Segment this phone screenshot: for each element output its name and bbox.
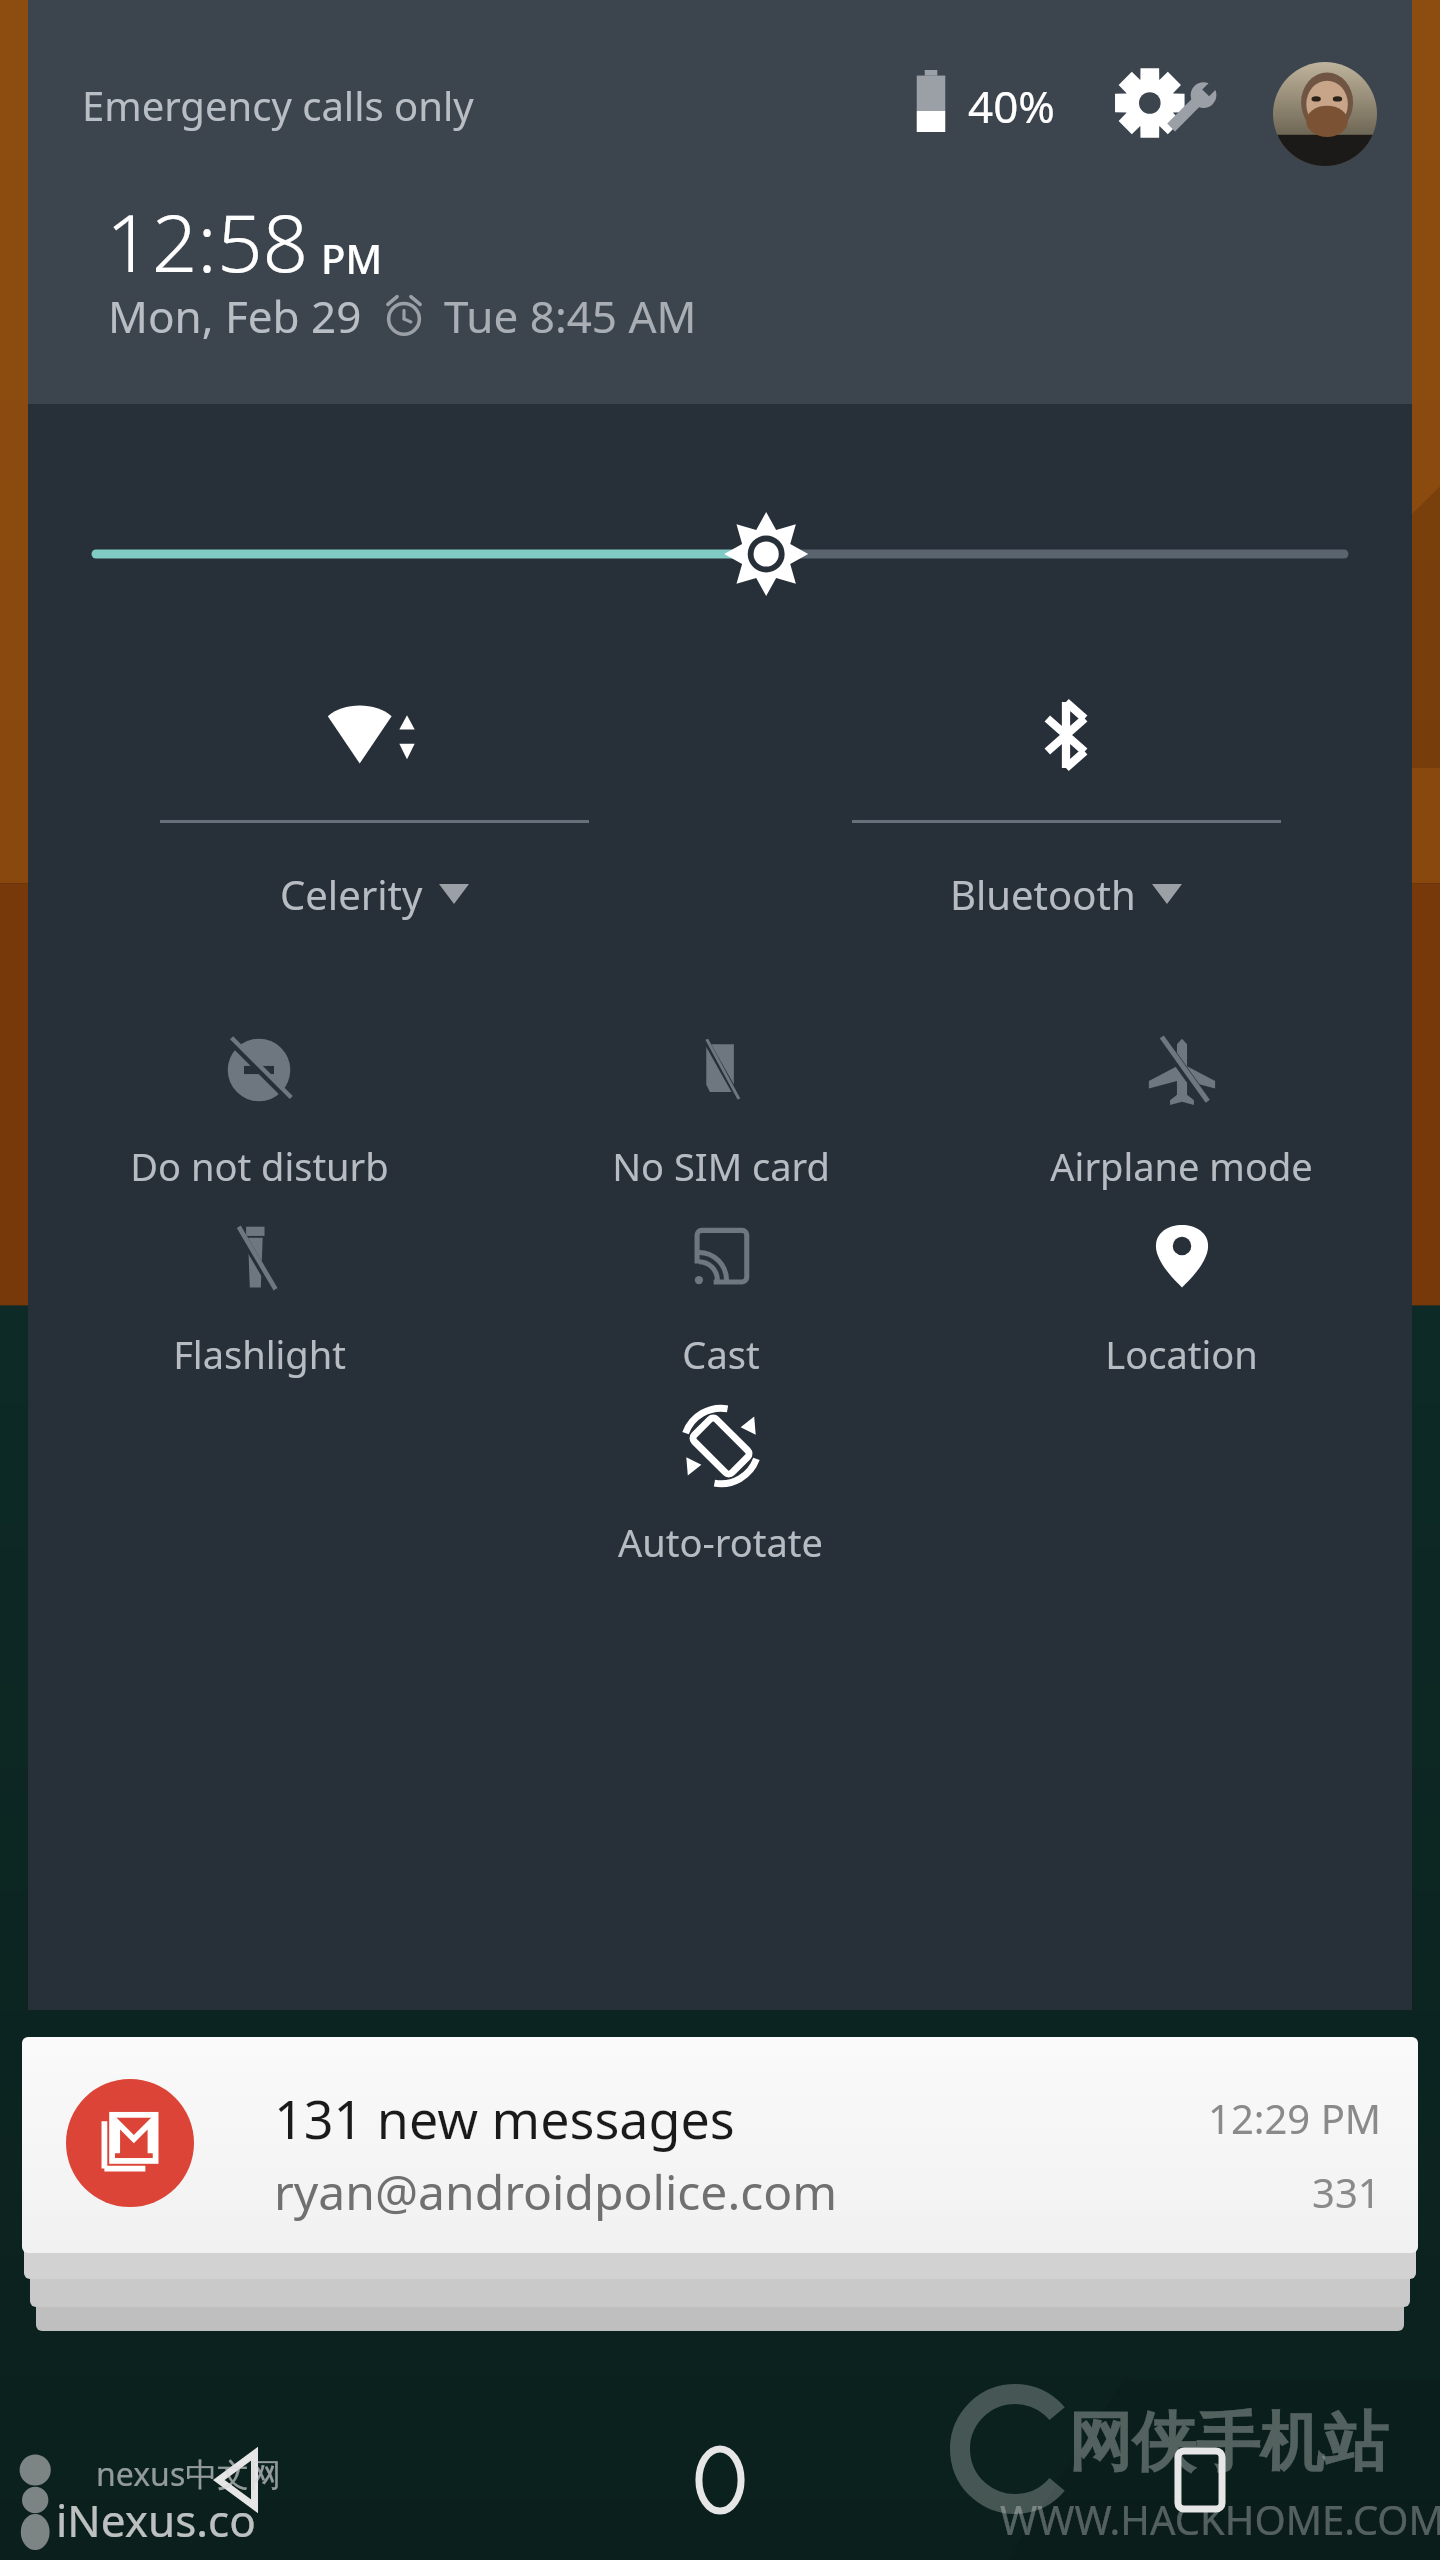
button[interactable]: Bluetooth — [720, 654, 1412, 984]
staticText: Airplane mode — [1050, 1140, 1313, 1192]
staticText: 网侠手机站 — [1068, 2402, 1388, 2483]
button[interactable]: User profile — [1273, 62, 1377, 166]
staticText: 12:58 — [106, 186, 309, 295]
staticText: PM — [321, 231, 383, 285]
button[interactable]: Location — [951, 1212, 1412, 1400]
staticText: Emergency calls only — [82, 78, 474, 132]
staticText: Mon, Feb 29 — [108, 286, 362, 346]
button[interactable]: Flashlight — [28, 1212, 490, 1400]
staticText: Flashlight — [173, 1328, 346, 1380]
staticText: Location — [1105, 1328, 1258, 1380]
staticText: Celerity — [280, 867, 423, 921]
button[interactable]: Auto-rotate — [490, 1400, 951, 1588]
staticText: Do not disturb — [130, 1140, 389, 1192]
staticText: iNexus.co — [56, 2490, 256, 2550]
button[interactable]: Do not disturb — [28, 1024, 490, 1212]
staticText: 331 — [1312, 2165, 1381, 2219]
button[interactable]: Home — [480, 2400, 960, 2560]
button[interactable]: Settings — [1108, 58, 1218, 148]
staticText: Auto-rotate — [618, 1516, 823, 1568]
button[interactable]: No SIM card — [490, 1024, 951, 1212]
staticText: ryan@androidpolice.com — [274, 2159, 838, 2224]
button[interactable]: Cast — [490, 1212, 951, 1400]
button[interactable]: Back — [0, 2400, 480, 2560]
staticText: nexus中文网 — [96, 2452, 282, 2496]
staticText: 12:29 PM — [1208, 2091, 1382, 2145]
button[interactable]: Brightness — [28, 494, 1412, 614]
button[interactable]: Recent apps — [960, 2400, 1440, 2560]
staticText: 40% — [968, 76, 1055, 136]
staticText: WWW.HACKHOME.COM — [1000, 2492, 1440, 2546]
staticText: 131 new messages — [274, 2083, 735, 2154]
button[interactable]: Celerity — [28, 654, 720, 984]
staticText: Bluetooth — [950, 867, 1136, 921]
button[interactable]: 131 new messages — [22, 2037, 1418, 2253]
staticText: Cast — [682, 1328, 760, 1380]
button[interactable]: Airplane mode — [951, 1024, 1412, 1212]
staticText: No SIM card — [612, 1140, 830, 1192]
staticText: Tue 8:45 AM — [444, 286, 697, 346]
